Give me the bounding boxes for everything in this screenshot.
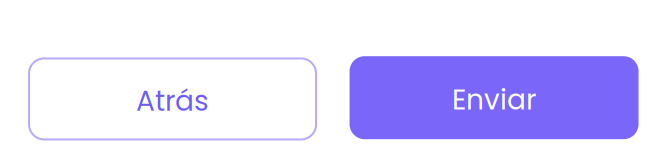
staticText: Enviar (452, 80, 536, 119)
staticText: Atrás (136, 81, 209, 120)
button[interactable]: Atrás (28, 56, 317, 139)
button[interactable]: Enviar (350, 56, 639, 139)
